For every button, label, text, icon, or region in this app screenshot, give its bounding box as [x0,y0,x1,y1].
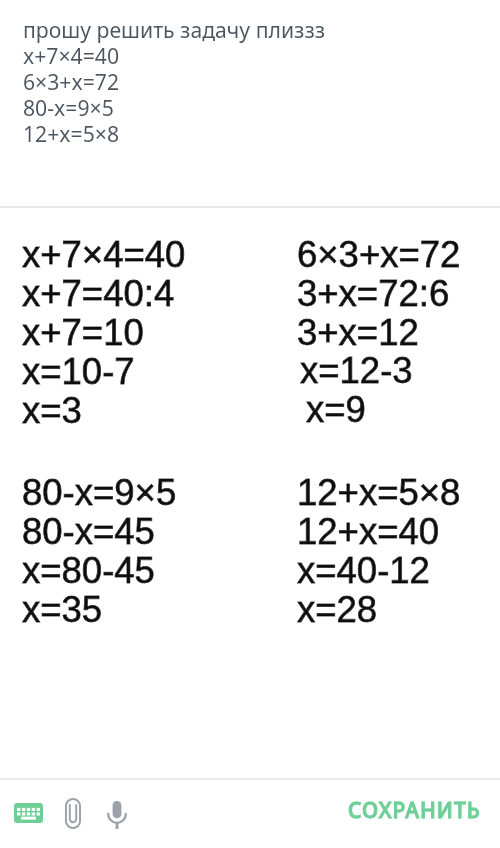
button[interactable]: Attach file [53,794,92,832]
staticText: x=12-3 [300,352,413,391]
staticText: 80-x=9×5 80-x=45 x=80-45 x=35 [22,474,177,630]
staticText: x=9 [306,391,366,430]
staticText: 6×3+x=72 3+x=72:6 3+x=12 [297,236,461,353]
staticText: СОХРАНИТЬ [348,796,481,825]
staticText: 12+x=5×8 12+x=40 x=40-12 x=28 [297,474,461,630]
staticText: x+7×4=40 x+7=40:4 x+7=10 x=10-7 x=3 [22,236,186,431]
staticText: x=12-3 [300,352,413,391]
staticText: 80-x=9×5 80-x=45 x=80-45 x=35 [22,474,177,630]
staticText: СОХРАНИТЬ [348,796,481,825]
button[interactable]: СОХРАНИТЬ [330,784,500,837]
staticText: 12+x=5×8 12+x=40 x=40-12 x=28 [297,474,461,630]
staticText: прошу решить задачу плиззз x+7×4=40 6×3+… [23,18,326,148]
button[interactable]: Keyboard [4,794,53,832]
staticText: x+7×4=40 x+7=40:4 x+7=10 x=10-7 x=3 [22,236,186,431]
staticText: x=9 [306,391,366,430]
button[interactable]: Voice input [95,796,139,834]
staticText: 6×3+x=72 3+x=72:6 3+x=12 [297,236,461,353]
